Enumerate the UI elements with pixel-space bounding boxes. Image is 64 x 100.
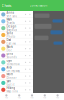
staticText: Gym <box>6 59 11 62</box>
button[interactable]: Chats <box>0 3 13 8</box>
staticText: Got it <box>6 83 14 86</box>
staticText: Tab <box>43 97 46 99</box>
button[interactable]: Conversation <box>28 4 48 7</box>
button[interactable]: Tab <box>13 93 26 100</box>
button[interactable]: Sam <box>0 79 33 86</box>
staticText: Tab <box>18 97 21 99</box>
staticText: Mom <box>6 73 12 76</box>
staticText: Mark <box>6 18 11 21</box>
staticText: Thanks <box>6 21 14 25</box>
staticText: Hiking <box>6 86 15 90</box>
button[interactable]: Tab <box>0 93 13 100</box>
button[interactable]: Tab <box>51 93 64 100</box>
staticText: Tab <box>56 97 59 99</box>
staticText: Chats <box>1 3 11 8</box>
staticText: Standup <box>6 28 17 32</box>
staticText: Photo <box>6 35 15 38</box>
button[interactable]: Work <box>0 45 33 52</box>
staticText: Doc <box>6 49 11 52</box>
button[interactable]: Alex <box>0 66 33 72</box>
staticText: Tab <box>5 97 8 99</box>
staticText: Sofia <box>6 31 12 35</box>
staticText: On my way <box>6 69 19 73</box>
button[interactable]: Mom <box>0 73 33 79</box>
button[interactable]: Anna <box>0 11 33 18</box>
button[interactable]: Gym <box>0 59 33 66</box>
staticText: Sounds <box>6 55 16 59</box>
staticText: Conversation <box>29 4 47 7</box>
staticText: Sam <box>6 79 10 83</box>
button[interactable]: Mark <box>0 18 33 25</box>
staticText: Anna <box>6 11 13 14</box>
staticText: Alex <box>6 66 11 69</box>
staticText: Map link <box>6 90 17 93</box>
staticText: Tab <box>30 97 33 99</box>
staticText: See you <box>6 14 17 18</box>
button[interactable]: Design <box>0 25 33 31</box>
staticText: Call me <box>6 42 16 45</box>
staticText: Tomorrow <box>6 62 19 66</box>
staticText: Work <box>6 45 12 49</box>
staticText: Dad <box>6 38 11 42</box>
button[interactable]: Tab <box>26 93 38 100</box>
staticText: Dinner <box>6 76 16 80</box>
button[interactable]: Dad <box>0 38 33 45</box>
button[interactable]: Sofia <box>0 31 33 38</box>
staticText: Design <box>6 25 16 28</box>
button[interactable]: Hiking <box>0 86 33 93</box>
button[interactable]: Tab <box>38 93 51 100</box>
button[interactable]: Lena <box>0 52 33 59</box>
staticText: Lena <box>6 52 12 55</box>
